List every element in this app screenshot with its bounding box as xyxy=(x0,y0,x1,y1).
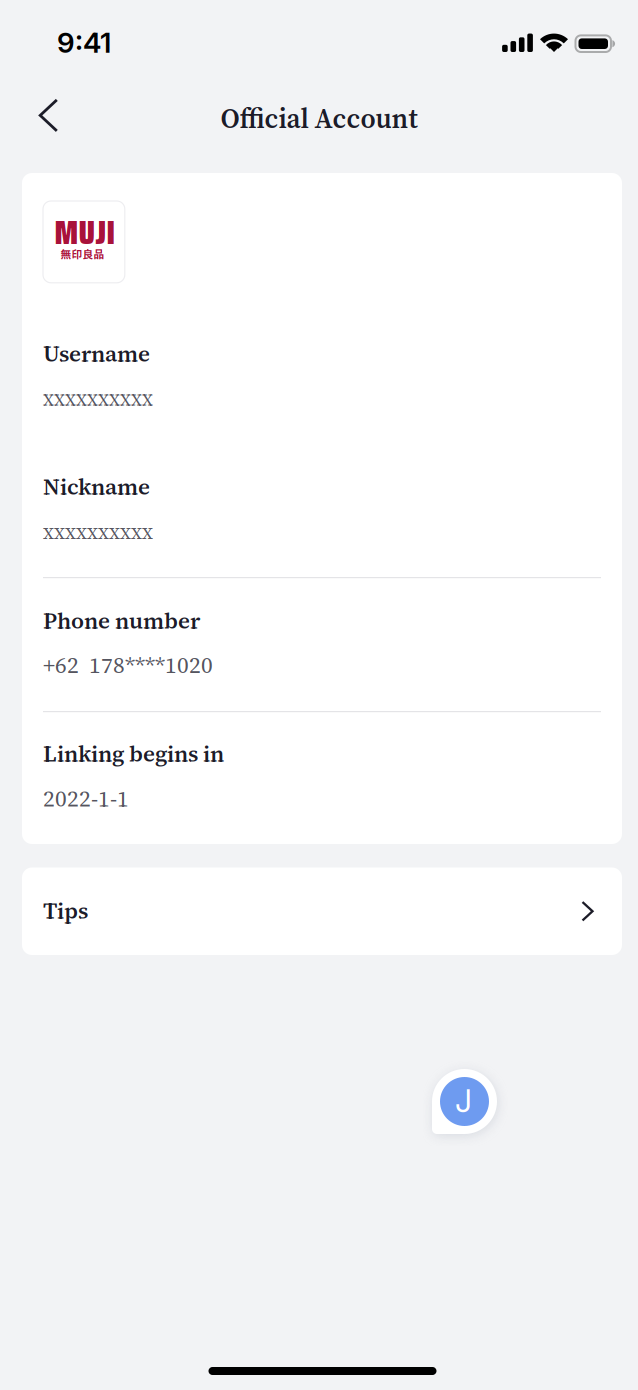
staticText: J xyxy=(455,1082,472,1119)
staticText: +62 178****1020 xyxy=(43,649,213,680)
staticText: 9:41 xyxy=(57,25,111,59)
staticText: Nickname xyxy=(43,471,150,502)
button[interactable]: Chat assistant xyxy=(432,1069,497,1134)
staticText: XXXXXXXXXX xyxy=(43,389,153,411)
staticText: XXXXXXXXXX xyxy=(43,522,153,544)
staticText: 無印良品 xyxy=(60,246,104,261)
button[interactable]: Tips xyxy=(22,867,622,955)
staticText: Tips xyxy=(43,895,88,926)
staticText: MUJI xyxy=(54,207,114,258)
staticText: Username xyxy=(43,338,150,369)
staticText: Linking begins in xyxy=(43,738,224,769)
staticText: Phone number xyxy=(43,605,200,636)
staticText: Official Account xyxy=(220,100,417,137)
button[interactable]: Back xyxy=(22,88,75,143)
staticText: 2022-1-1 xyxy=(43,783,129,814)
